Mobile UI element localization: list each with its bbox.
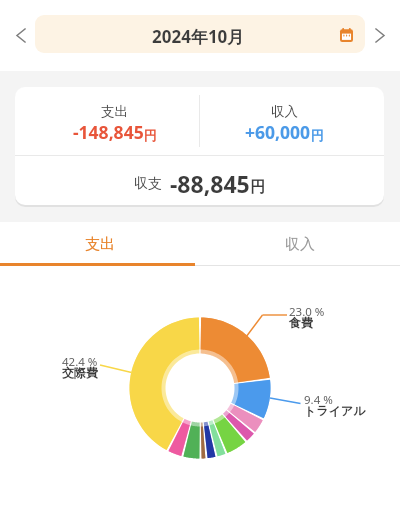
staticText: トライアル — [304, 403, 366, 418]
button[interactable]: Previous month — [0, 0, 35, 71]
staticText: 円 — [250, 178, 265, 197]
staticText: -148,845 — [73, 120, 144, 144]
staticText: 支出 — [85, 235, 115, 254]
staticText: 42.4 % — [62, 354, 98, 370]
button[interactable]: 支出 — [0, 222, 200, 269]
staticText: 9.4 % — [304, 392, 333, 408]
staticText: 収支 — [134, 175, 162, 193]
button[interactable]: 2024年10月 — [35, 15, 365, 53]
staticText: 2024年10月 — [152, 25, 245, 48]
button[interactable]: Next month — [365, 0, 400, 71]
staticText: 食費 — [289, 315, 313, 330]
staticText: 支出 — [101, 103, 128, 120]
staticText: 円 — [311, 127, 324, 143]
staticText: +60,000 — [245, 120, 311, 144]
staticText: -88,845 — [170, 168, 250, 199]
staticText: 収入 — [271, 103, 298, 120]
staticText: 23.0 % — [289, 304, 325, 320]
staticText: 収入 — [285, 235, 315, 254]
staticText: 円 — [144, 127, 157, 143]
staticText: 交際費 — [62, 365, 98, 380]
button[interactable]: 収入 — [200, 222, 400, 269]
